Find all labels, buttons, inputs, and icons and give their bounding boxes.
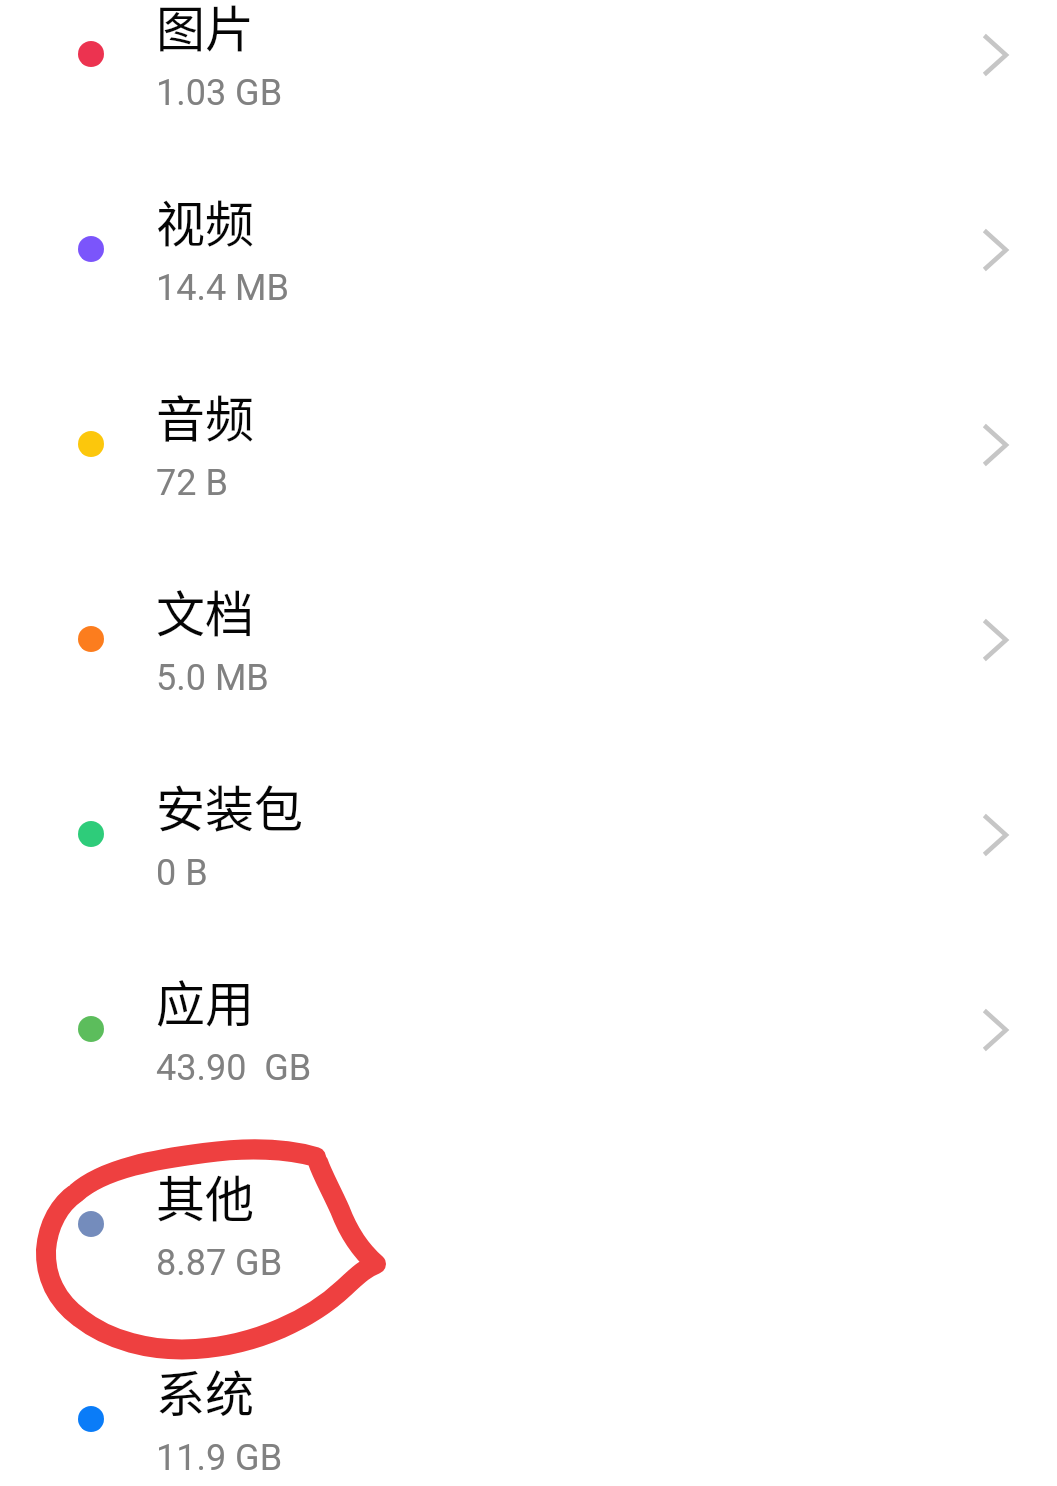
staticText: 文档	[156, 575, 255, 646]
staticText: 系统	[156, 1355, 255, 1426]
button[interactable]: 其他	[0, 1160, 1057, 1355]
staticText: 应用	[156, 965, 255, 1036]
button[interactable]: 文档	[0, 575, 1057, 770]
button[interactable]: 查看 应用 详情	[969, 1003, 1023, 1057]
button[interactable]: 系统	[0, 1355, 1057, 1486]
staticText: 8.87 GB	[156, 1242, 283, 1284]
staticText: 5.0 MB	[156, 657, 269, 699]
button[interactable]: 查看 视频 详情	[969, 223, 1023, 277]
staticText: 视频	[156, 185, 255, 256]
staticText: 0 B	[156, 852, 208, 894]
staticText: 1.03 GB	[156, 72, 283, 114]
staticText: 14.4 MB	[156, 267, 289, 309]
staticText: 音频	[156, 380, 255, 451]
staticText: 安装包	[156, 770, 304, 841]
button[interactable]: 音频	[0, 380, 1057, 575]
button[interactable]: 应用	[0, 965, 1057, 1160]
button[interactable]: 查看 安装包 详情	[969, 808, 1023, 862]
button[interactable]: 查看 音频 详情	[969, 418, 1023, 472]
button[interactable]: 查看 图片 详情	[969, 28, 1023, 82]
staticText: 43.90 GB	[156, 1047, 312, 1089]
staticText: 图片	[156, 0, 255, 61]
staticText: 72 B	[156, 462, 228, 504]
button[interactable]: 安装包	[0, 770, 1057, 965]
staticText: 11.9 GB	[156, 1437, 283, 1479]
button[interactable]: 视频	[0, 185, 1057, 380]
staticText: 其他	[156, 1160, 255, 1231]
button[interactable]: 图片	[0, 0, 1057, 185]
button[interactable]: 查看 文档 详情	[969, 613, 1023, 667]
